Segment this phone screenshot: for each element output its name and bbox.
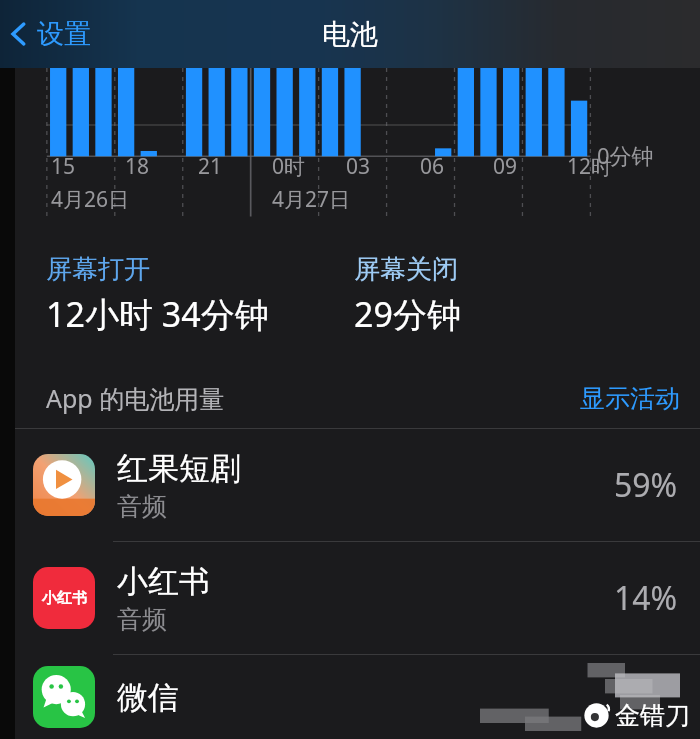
staticText: 屏幕打开 bbox=[46, 253, 150, 286]
staticText: 金错刀 bbox=[615, 700, 690, 731]
staticText: 小红书 bbox=[42, 589, 87, 608]
staticText: 小红书 bbox=[117, 562, 210, 601]
staticText: 设置 bbox=[37, 17, 91, 51]
staticText: 15 bbox=[51, 152, 76, 181]
staticText: 09 bbox=[493, 152, 518, 181]
staticText: 屏幕关闭 bbox=[354, 253, 458, 286]
staticText: 红果短剧 bbox=[117, 449, 241, 488]
staticText: 4月27日 bbox=[272, 185, 351, 214]
other: 返回设置 bbox=[4, 19, 34, 49]
staticText: 微信 bbox=[117, 678, 179, 717]
staticText: 显示活动 bbox=[580, 383, 680, 414]
staticText: 12时 bbox=[567, 152, 613, 181]
staticText: 03 bbox=[346, 152, 371, 181]
button[interactable]: 返回设置 bbox=[0, 9, 105, 59]
staticText: 29分钟 bbox=[354, 291, 461, 337]
staticText: 电池 bbox=[322, 17, 378, 52]
button[interactable]: 显示活动 bbox=[580, 383, 680, 414]
staticText: 0分钟 bbox=[597, 140, 654, 170]
staticText: 0时 bbox=[272, 152, 306, 181]
staticText: 06 bbox=[420, 152, 445, 181]
button[interactable]: 微信 bbox=[15, 655, 700, 739]
button[interactable]: 小红书 bbox=[15, 542, 700, 654]
staticText: 音频 bbox=[117, 604, 167, 635]
button[interactable]: 红果短剧 bbox=[15, 429, 700, 541]
staticText: 14% bbox=[614, 576, 678, 620]
staticText: 18 bbox=[125, 152, 150, 181]
staticText: App 的电池用量 bbox=[46, 381, 225, 415]
staticText: 21 bbox=[198, 152, 223, 181]
staticText: 4月26日 bbox=[51, 185, 130, 214]
staticText: 59% bbox=[614, 463, 678, 507]
staticText: 音频 bbox=[117, 491, 167, 522]
staticText: 12小时 34分钟 bbox=[46, 291, 269, 337]
